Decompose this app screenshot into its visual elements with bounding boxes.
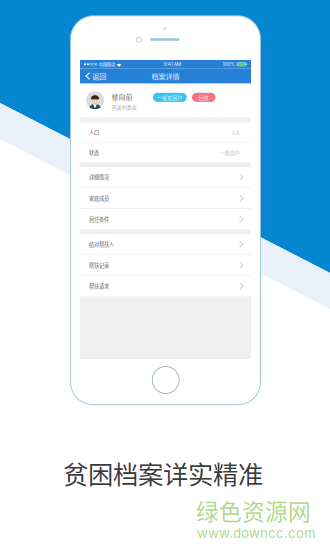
staticText: 状态 <box>89 149 99 156</box>
staticText: 100% <box>222 61 235 67</box>
staticText: 帮扶记录 <box>89 261 109 269</box>
button[interactable]: 帮扶请求 <box>80 276 251 296</box>
button[interactable]: 家庭成员 <box>80 188 251 208</box>
staticText: 帮扶请求 <box>89 282 109 290</box>
button[interactable]: 居住条件 <box>80 209 251 230</box>
staticText: 回访 <box>199 94 209 101</box>
staticText: 结对帮扶人 <box>89 240 114 248</box>
staticText: www.downcc.com <box>197 525 316 541</box>
staticText: 详细情况 <box>89 173 109 181</box>
button[interactable]: 人口 <box>80 122 251 142</box>
staticText: 档案详情 <box>151 71 179 81</box>
button[interactable]: 结对帮扶人 <box>80 234 251 254</box>
staticText: 2人 <box>232 129 240 136</box>
staticText: 中国移动 <box>99 61 115 67</box>
staticText: 一般农户 <box>220 149 240 156</box>
button[interactable]: 状态 <box>80 143 251 162</box>
button[interactable]: 帮扶记录 <box>80 255 251 275</box>
button[interactable]: 详细情况 <box>80 167 251 187</box>
staticText: 一般贫困户 <box>157 94 182 101</box>
button[interactable]: 徐向前 <box>80 84 251 118</box>
staticText: 徐向前 <box>112 92 133 102</box>
staticText: 人口 <box>89 128 99 136</box>
staticText: 贫困档案详实精准 <box>63 454 263 491</box>
staticText: 9:41 AM <box>164 61 181 67</box>
staticText: 西美村委会 <box>112 103 137 111</box>
staticText: 居住条件 <box>89 215 109 223</box>
staticText: 家庭成员 <box>89 194 109 202</box>
staticText: 返回 <box>92 71 106 81</box>
button[interactable]: 返回 <box>80 68 110 84</box>
staticText: 绿色资源网 <box>196 494 311 527</box>
